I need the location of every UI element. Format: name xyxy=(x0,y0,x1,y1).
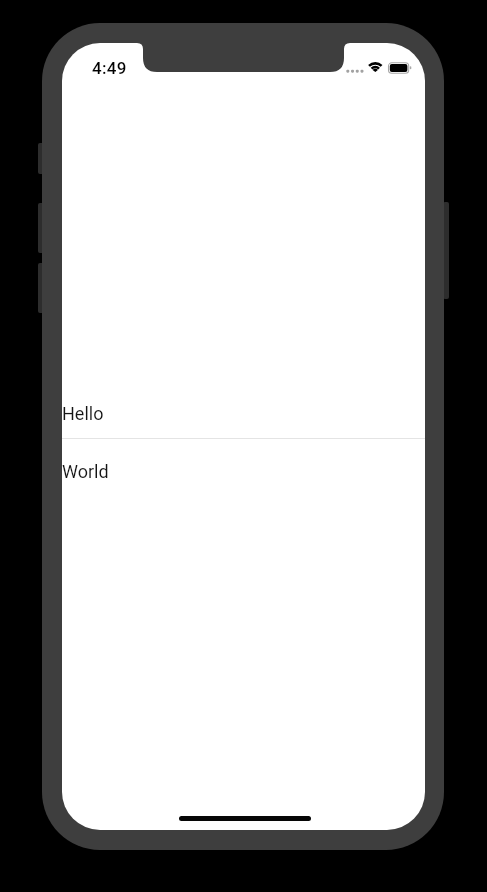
staticText: World xyxy=(62,461,109,482)
staticText: 4:49 xyxy=(92,58,127,78)
staticText: Hello xyxy=(62,403,104,424)
